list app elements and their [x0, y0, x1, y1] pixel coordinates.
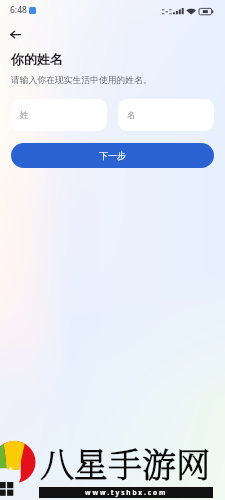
staticText: 姓 — [20, 110, 29, 121]
staticText: 下一步 — [99, 150, 126, 161]
staticText: 八星手游网 — [40, 438, 210, 487]
staticText: 你的姓名 — [11, 51, 63, 67]
button[interactable]: 下一步 — [11, 143, 214, 168]
staticText: 请输入你在现实生活中使用的姓名。 — [11, 75, 152, 86]
button[interactable]: Back — [6, 25, 24, 43]
button[interactable]: 姓 — [11, 99, 107, 131]
staticText: www.tyshbx.com — [85, 488, 168, 497]
staticText: 6:48 — [10, 4, 27, 16]
staticText: 名 — [127, 110, 136, 121]
button[interactable]: 名 — [118, 99, 214, 131]
other: Status icons — [160, 4, 215, 16]
